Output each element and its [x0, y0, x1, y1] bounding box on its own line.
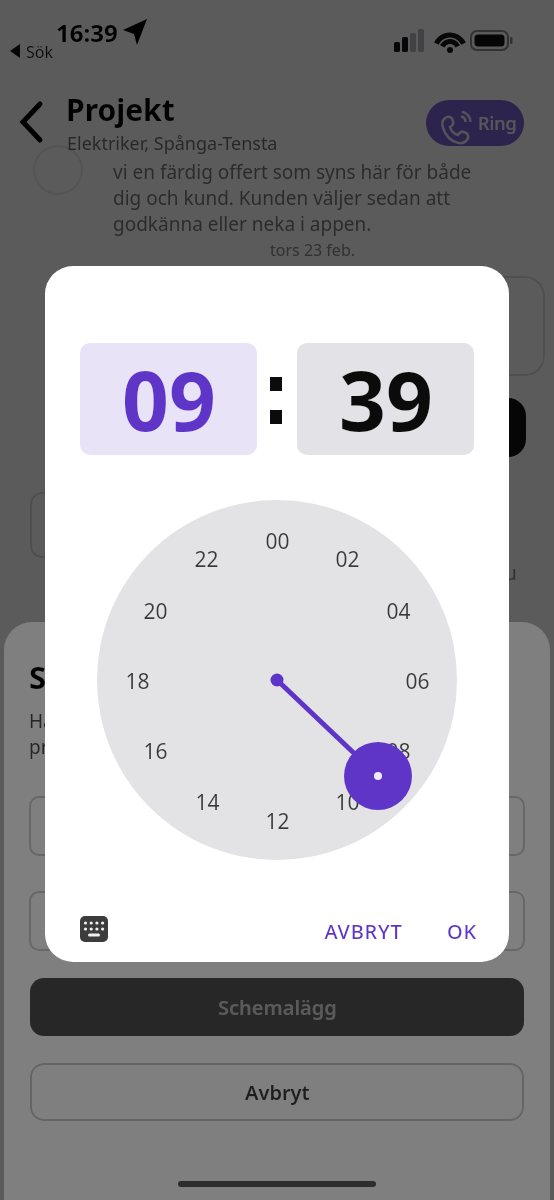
staticText: Schemalägg: [29, 656, 217, 698]
button[interactable]: [29, 796, 525, 856]
button[interactable]: 08: [376, 737, 420, 763]
staticText: tors 23 feb.: [270, 239, 356, 261]
button[interactable]: 02: [325, 545, 369, 571]
staticText: 14: [195, 788, 220, 814]
button[interactable]: 06: [395, 667, 439, 693]
button[interactable]: AVBRYT: [298, 916, 428, 946]
button[interactable]: 39: [297, 343, 474, 455]
staticText: 10: [335, 788, 360, 814]
staticText: Har du inte möjlighet att ta dig an: [29, 708, 332, 734]
staticText: Sök: [26, 41, 54, 63]
staticText: 16:39: [56, 16, 118, 49]
staticText: AVBRYT: [324, 918, 403, 945]
staticText: Avbryt: [245, 1079, 310, 1106]
button[interactable]: 20: [133, 597, 177, 623]
button[interactable]: [80, 916, 108, 942]
staticText: 06: [405, 667, 430, 693]
staticText: projektet just nu? Schemalägg det.: [29, 734, 338, 760]
button[interactable]: 22: [184, 545, 228, 571]
staticText: vi en färdig offert som syns här för båd…: [113, 159, 472, 185]
staticText: 02: [335, 545, 360, 571]
staticText: 18: [125, 667, 150, 693]
button[interactable]: 12: [255, 807, 299, 833]
button[interactable]: 04: [376, 597, 420, 623]
staticText: 20: [143, 597, 168, 623]
staticText: Schemalägg: [218, 994, 337, 1021]
staticText: Ring: [478, 111, 517, 136]
button[interactable]: 18: [115, 667, 159, 693]
staticText: Projekt: [66, 89, 175, 130]
staticText: 08: [386, 737, 411, 763]
staticText: OK: [447, 918, 477, 945]
button[interactable]: Schemalägg: [30, 978, 524, 1036]
button[interactable]: Ring: [426, 100, 524, 146]
staticText: 00: [265, 527, 290, 553]
staticText: 09: [122, 343, 216, 455]
button[interactable]: 00: [255, 527, 299, 553]
button[interactable]: [29, 891, 525, 951]
staticText: 22: [194, 545, 219, 571]
staticText: 12: [265, 807, 290, 833]
staticText: Elektriker, Spånga-Tensta: [67, 131, 278, 156]
staticText: dig och kund. Kunden väljer sedan att: [113, 185, 451, 211]
button[interactable]: 10: [325, 788, 369, 814]
button[interactable]: OK: [427, 916, 497, 946]
staticText: 04: [386, 597, 411, 623]
button[interactable]: 14: [185, 788, 229, 814]
staticText: godkänna eller neka i appen.: [113, 211, 372, 237]
staticText: u: [505, 560, 517, 586]
button[interactable]: Avbryt: [30, 1063, 524, 1121]
button[interactable]: 09: [80, 343, 257, 455]
staticText: 39: [339, 343, 433, 455]
button[interactable]: 16: [133, 737, 177, 763]
staticText: 16: [143, 737, 168, 763]
